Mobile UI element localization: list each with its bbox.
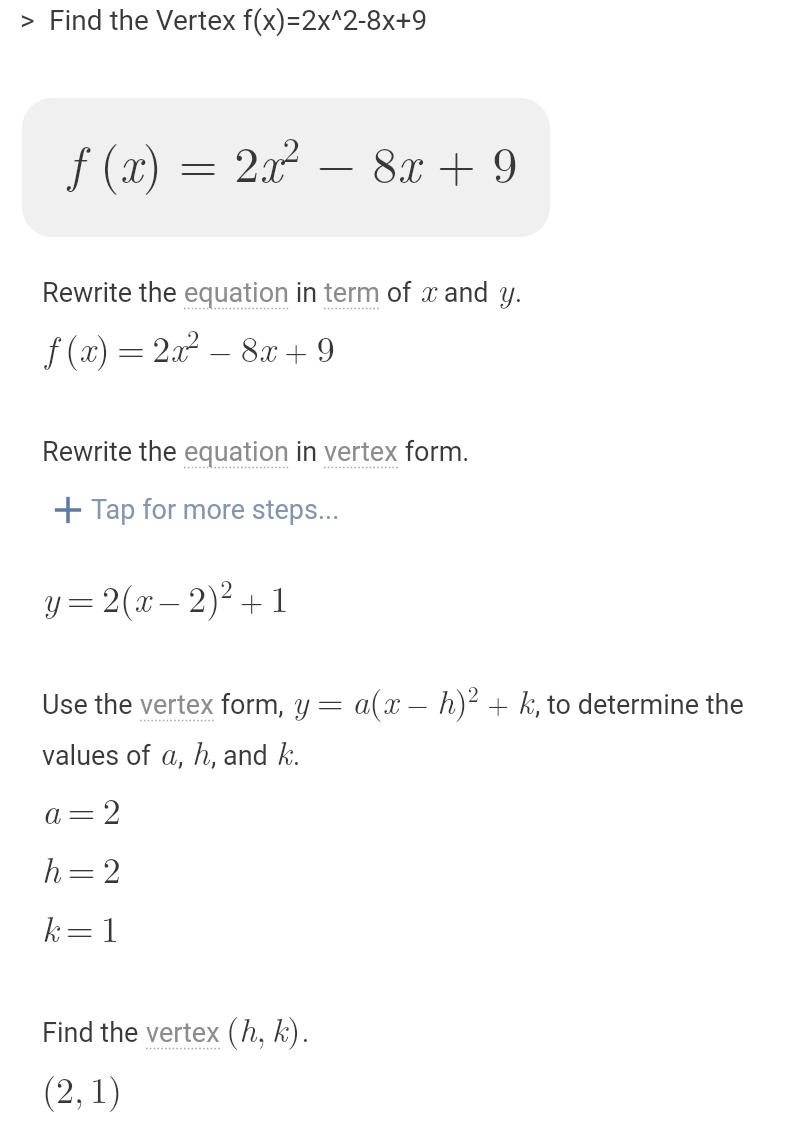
staticText: a = 2 — [42, 783, 121, 834]
button[interactable]: term — [324, 277, 380, 309]
staticText: in — [289, 277, 324, 309]
staticText: Tap for more steps... — [91, 494, 340, 526]
staticText: in — [289, 436, 324, 468]
staticText: and — [437, 277, 496, 309]
staticText: y = a(x − h)2 + k — [292, 676, 534, 724]
button[interactable]: equation — [184, 436, 289, 468]
staticText: > Find the Vertex f(x)=2x^2-8x+9 — [20, 4, 428, 37]
staticText: of — [380, 277, 419, 309]
button[interactable]: f (x) = 2x2 − 8x + 9 — [22, 98, 550, 237]
staticText: h — [192, 727, 210, 775]
staticText: k — [276, 727, 292, 775]
staticText: x — [420, 264, 436, 312]
staticText: form. — [398, 436, 470, 468]
button[interactable]: Tap for more steps — [42, 494, 340, 526]
staticText: , to determine the — [535, 689, 744, 721]
button[interactable]: vertex — [140, 689, 214, 721]
staticText: . — [515, 277, 523, 309]
staticText: Rewrite the — [42, 436, 184, 468]
staticText: form, — [214, 689, 291, 721]
staticText: k = 1 — [42, 901, 119, 952]
staticText: , and — [211, 740, 275, 772]
staticText: values of — [42, 740, 158, 772]
staticText: a — [159, 727, 177, 775]
staticText: h = 2 — [42, 842, 121, 893]
staticText: y = 2(x − 2)2 + 1 — [42, 570, 289, 623]
button[interactable]: equation — [184, 277, 289, 309]
staticText: (h, k) — [226, 1004, 301, 1052]
staticText: f (x) = 2x2 − 8x + 9 — [45, 320, 335, 373]
staticText: Find the — [42, 1017, 146, 1049]
button[interactable]: vertex — [146, 1017, 220, 1049]
staticText: , — [178, 740, 191, 772]
staticText: y — [497, 264, 514, 312]
staticText: f (x) = 2x2 − 8x + 9 — [68, 123, 518, 197]
staticText: Rewrite the — [42, 277, 184, 309]
staticText: Use the — [42, 689, 140, 721]
staticText: (2, 1) — [42, 1062, 123, 1113]
staticText: . — [302, 1017, 310, 1049]
button[interactable]: vertex — [324, 436, 398, 468]
staticText: . — [293, 740, 301, 772]
